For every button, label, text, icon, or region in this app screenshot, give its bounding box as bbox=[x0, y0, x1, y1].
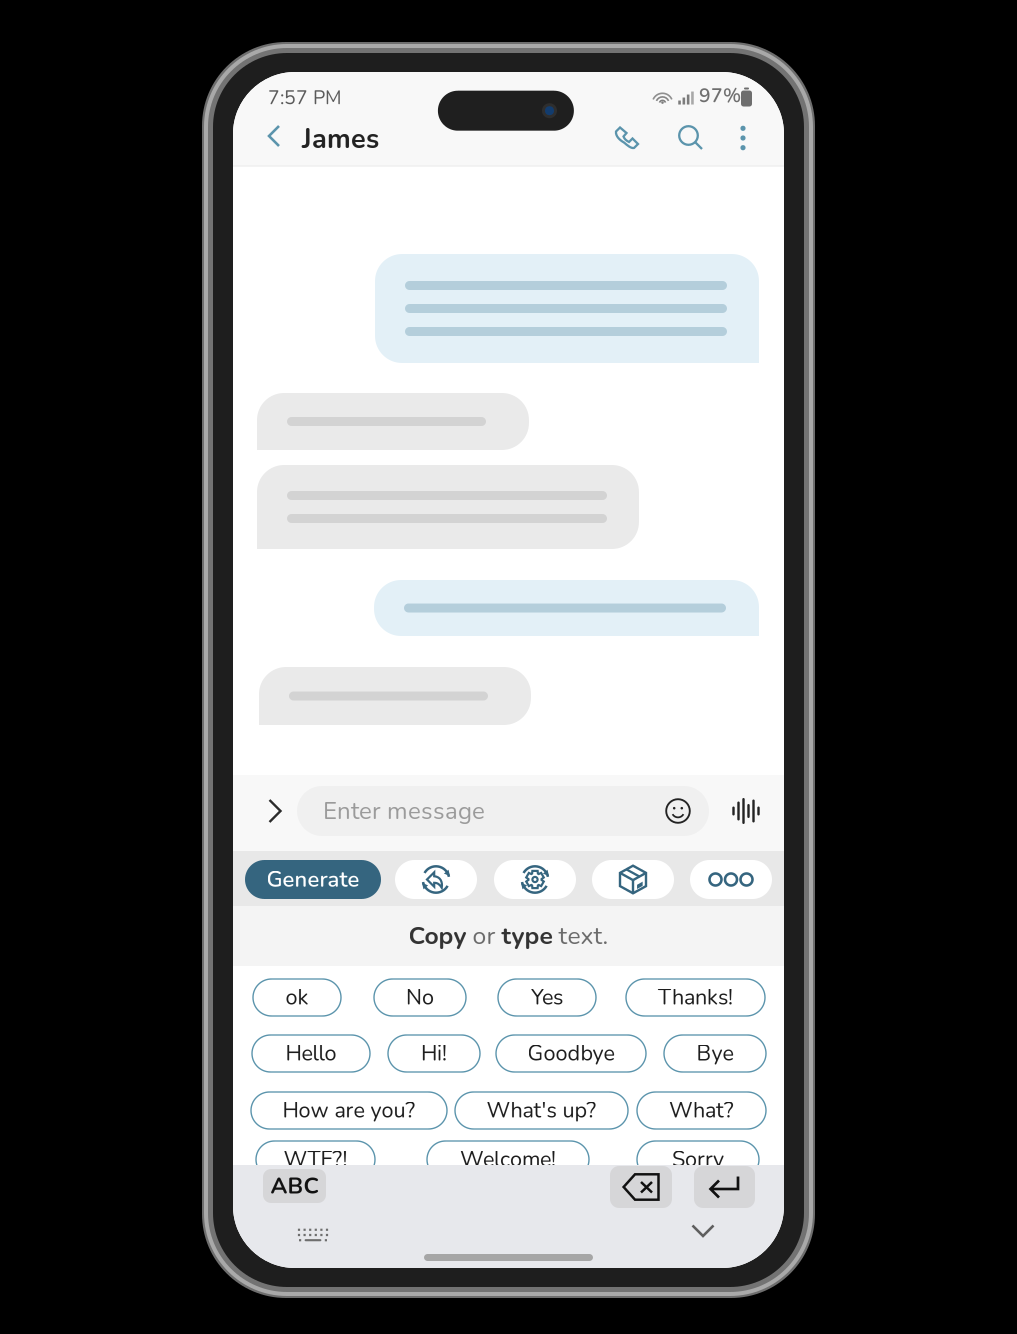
button[interactable]: Voice message bbox=[728, 786, 764, 836]
button[interactable]: No bbox=[374, 979, 466, 1016]
button[interactable]: More bbox=[690, 860, 772, 899]
button[interactable]: Hello bbox=[252, 1035, 370, 1072]
staticText: ABC bbox=[270, 1170, 318, 1201]
button[interactable]: How are you? bbox=[251, 1092, 447, 1129]
staticText: 7:57 PM bbox=[268, 85, 342, 111]
staticText: Enter message bbox=[323, 795, 485, 827]
staticText: Welcome! bbox=[460, 1145, 556, 1174]
button[interactable]: What's up? bbox=[455, 1092, 628, 1129]
staticText: WTF?! bbox=[283, 1145, 347, 1174]
button[interactable]: Bye bbox=[664, 1035, 766, 1072]
button[interactable]: ABC bbox=[263, 1169, 326, 1203]
staticText: Goodbye bbox=[527, 1039, 614, 1068]
button[interactable]: Hi! bbox=[388, 1035, 480, 1072]
button[interactable]: Rephrase bbox=[395, 860, 477, 899]
staticText: text. bbox=[552, 919, 608, 953]
button[interactable]: What? bbox=[637, 1092, 766, 1129]
staticText: or bbox=[466, 919, 501, 953]
button[interactable]: Switch keyboard bbox=[290, 1223, 336, 1247]
staticText: type bbox=[501, 919, 552, 953]
staticText: Copy bbox=[408, 919, 466, 953]
button[interactable]: Generate bbox=[245, 860, 381, 899]
staticText: 97% bbox=[699, 83, 741, 109]
staticText: Thanks! bbox=[658, 983, 733, 1012]
staticText: No bbox=[406, 983, 434, 1012]
staticText: Hello bbox=[285, 1039, 336, 1068]
staticText: What's up? bbox=[486, 1096, 596, 1125]
button[interactable]: Templates bbox=[592, 860, 674, 899]
button[interactable]: More options bbox=[722, 118, 764, 158]
button[interactable]: Customise bbox=[494, 860, 576, 899]
staticText: ok bbox=[285, 983, 308, 1012]
button[interactable]: WTF?! bbox=[256, 1141, 375, 1178]
button[interactable]: Search bbox=[669, 118, 713, 158]
staticText: Bye bbox=[696, 1039, 733, 1068]
button[interactable]: Yes bbox=[498, 979, 596, 1016]
button[interactable]: Thanks! bbox=[626, 979, 765, 1016]
button[interactable]: Welcome! bbox=[427, 1141, 589, 1178]
button[interactable]: Show more options bbox=[257, 788, 293, 834]
button[interactable]: ok bbox=[253, 979, 341, 1016]
button[interactable]: Goodbye bbox=[496, 1035, 646, 1072]
staticText: What? bbox=[669, 1096, 734, 1125]
staticText: How are you? bbox=[282, 1096, 415, 1125]
button[interactable]: Hide keyboard bbox=[683, 1220, 723, 1242]
staticText: Generate bbox=[266, 864, 359, 894]
button[interactable]: Back bbox=[255, 120, 293, 152]
staticText: James bbox=[302, 120, 379, 157]
button[interactable]: Sorry bbox=[637, 1141, 759, 1178]
button[interactable]: Return bbox=[694, 1166, 755, 1208]
staticText: Sorry bbox=[672, 1145, 724, 1174]
button[interactable]: Emoji bbox=[663, 797, 693, 825]
button[interactable]: Call bbox=[605, 118, 649, 158]
staticText: Hi! bbox=[421, 1039, 447, 1068]
button[interactable]: Delete bbox=[610, 1166, 672, 1208]
staticText: Yes bbox=[531, 983, 563, 1012]
